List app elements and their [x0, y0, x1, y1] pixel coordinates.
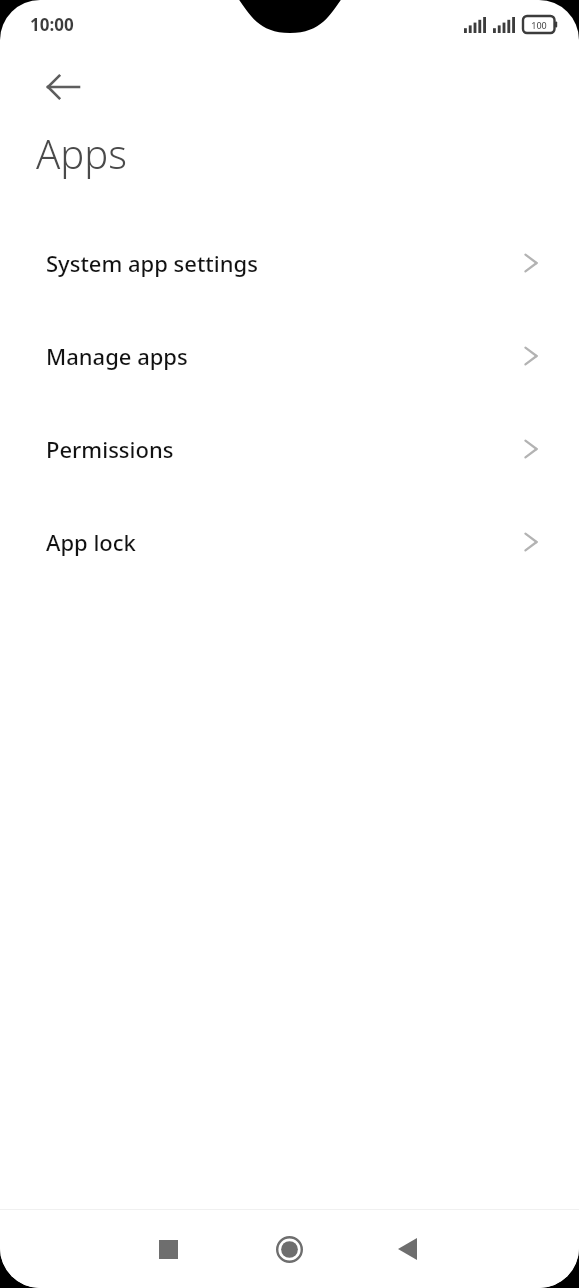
button[interactable]: App lock [0, 495, 579, 588]
button[interactable]: Permissions [0, 402, 579, 495]
button[interactable]: Back [376, 1218, 438, 1280]
staticText: System app settings [46, 248, 258, 278]
staticText: 10:00 [30, 13, 74, 36]
staticText: Manage apps [46, 341, 188, 371]
button[interactable]: System app settings [0, 216, 579, 309]
staticText: 100 [531, 19, 547, 31]
staticText: App lock [46, 527, 136, 557]
button[interactable]: Home [258, 1218, 320, 1280]
button[interactable]: Recents [137, 1218, 199, 1280]
staticText: Apps [36, 126, 127, 180]
staticText: Permissions [46, 434, 174, 464]
button[interactable]: Back [30, 54, 96, 120]
button[interactable]: Manage apps [0, 309, 579, 402]
